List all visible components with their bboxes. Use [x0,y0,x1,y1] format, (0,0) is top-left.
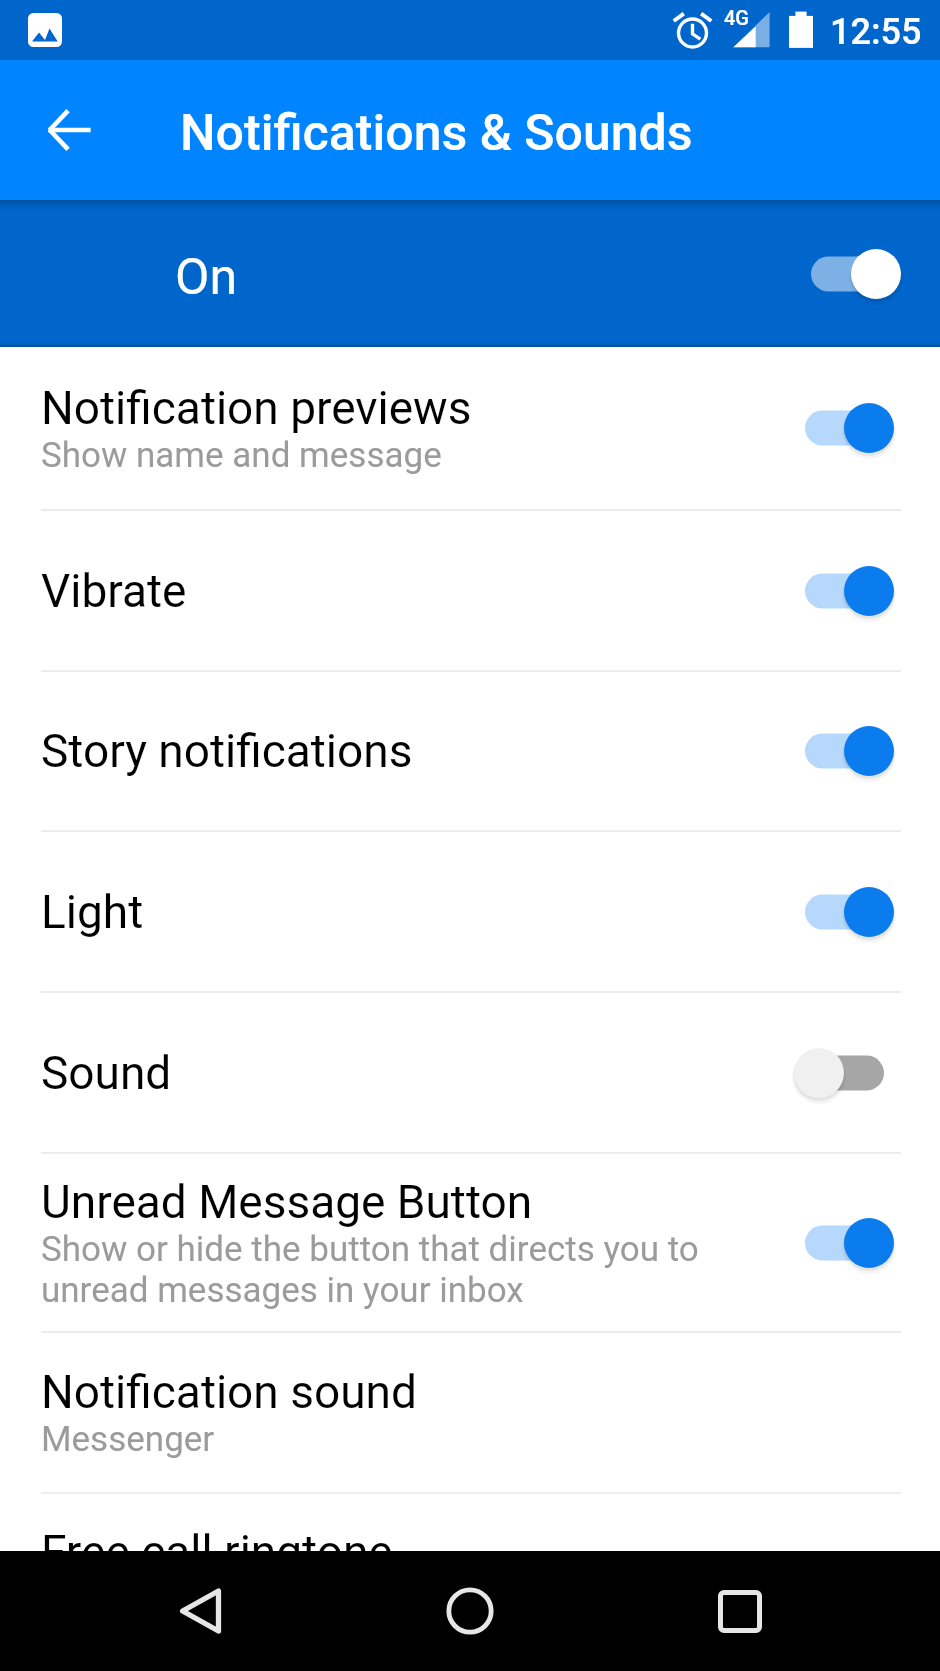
staticText: Light [41,885,144,939]
staticText: On [175,248,238,307]
staticText: Unread Message Button [41,1175,533,1229]
button[interactable]: Toggle Sound [780,1042,940,1104]
button[interactable]: Toggle Light [780,881,940,943]
staticText: Messenger [41,1419,215,1460]
staticText: Sound [41,1046,172,1100]
staticText: Notification sound [41,1365,417,1419]
button[interactable]: On [0,200,940,347]
button[interactable]: Notification previews [0,347,940,509]
staticText: Notification previews [41,381,472,435]
button[interactable]: Free call ringtone [0,1494,940,1653]
button[interactable]: Story notifications [0,672,940,830]
button[interactable]: Toggle Unread Message Button [780,1212,940,1274]
button[interactable]: Vibrate [0,511,940,670]
staticText: Vibrate [41,564,187,618]
button[interactable]: Sound [0,993,940,1152]
button[interactable]: Toggle Vibrate [780,560,940,622]
staticText: Show or hide the button that directs you… [41,1229,720,1311]
button[interactable]: Toggle Notification previews [780,397,940,459]
button[interactable]: Notification sound [0,1333,940,1492]
button[interactable]: Home [410,1551,530,1671]
button[interactable]: Recents [680,1551,800,1671]
button[interactable]: Back [141,1551,261,1671]
button[interactable]: Light [0,832,940,991]
button[interactable]: Unread Message Button [0,1154,940,1331]
button[interactable]: Back [0,60,138,200]
staticText: Show name and message [41,435,442,476]
staticText: 12:55 [830,11,922,53]
staticText: Free call ringtone [41,1525,393,1579]
button[interactable]: Toggle Story notifications [780,720,940,782]
button[interactable]: Turn notifications off [780,243,940,305]
staticText: Notifications & Sounds [180,104,693,163]
staticText: Story notifications [41,724,413,778]
staticText: 4G [724,6,749,29]
